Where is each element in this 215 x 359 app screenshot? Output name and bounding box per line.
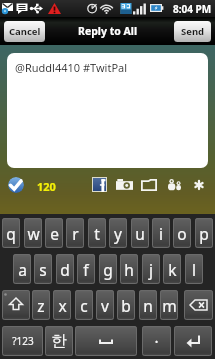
staticText: v bbox=[101, 295, 109, 316]
button[interactable]: x bbox=[53, 290, 71, 320]
staticText: a bbox=[18, 259, 27, 280]
button[interactable]: m bbox=[160, 290, 178, 320]
button[interactable]: 한 bbox=[45, 326, 73, 356]
staticText: @Ruddl4410 #TwitPal bbox=[15, 60, 128, 75]
button[interactable]: i bbox=[152, 218, 170, 248]
button[interactable]: ?123 bbox=[2, 326, 43, 356]
staticText: j bbox=[149, 259, 153, 280]
staticText: m bbox=[162, 295, 177, 316]
button[interactable]: f bbox=[77, 254, 95, 284]
button[interactable]: h bbox=[120, 254, 138, 284]
button[interactable]: g bbox=[99, 254, 117, 284]
staticText: i bbox=[159, 223, 163, 244]
button[interactable]: d bbox=[56, 254, 74, 284]
staticText: 8:04 PM bbox=[173, 2, 212, 16]
button[interactable]: n bbox=[139, 290, 157, 320]
button[interactable]: l bbox=[185, 254, 203, 284]
staticText: h bbox=[124, 259, 134, 280]
staticText: s bbox=[39, 259, 47, 280]
staticText: Reply to All bbox=[78, 24, 138, 38]
button[interactable]: w bbox=[24, 218, 42, 248]
staticText: d bbox=[60, 259, 70, 280]
staticText: ?123 bbox=[12, 334, 34, 348]
button[interactable]: c bbox=[75, 290, 93, 320]
staticText: u bbox=[135, 223, 145, 244]
staticText: p bbox=[199, 223, 209, 244]
staticText: k bbox=[168, 259, 177, 280]
button[interactable]: e bbox=[45, 218, 63, 248]
staticText: t bbox=[94, 223, 100, 244]
button[interactable]: s bbox=[34, 254, 52, 284]
staticText: n bbox=[143, 295, 153, 316]
button[interactable]: More bbox=[195, 181, 203, 189]
button[interactable]: Send bbox=[174, 21, 211, 42]
staticText: Send bbox=[181, 25, 205, 38]
button[interactable]: @Ruddl4410 #TwitPal bbox=[7, 53, 208, 168]
button[interactable]: Gallery bbox=[141, 179, 157, 195]
button[interactable]: z bbox=[32, 290, 50, 320]
button[interactable]: t bbox=[88, 218, 106, 248]
staticText: o bbox=[177, 223, 187, 244]
button[interactable]: Camera bbox=[116, 179, 133, 196]
button[interactable]: b bbox=[117, 290, 135, 320]
button[interactable] bbox=[174, 326, 212, 356]
button[interactable]: k bbox=[163, 254, 181, 284]
button[interactable]: Facebook bbox=[92, 177, 107, 192]
button[interactable] bbox=[75, 326, 137, 356]
button[interactable]: p bbox=[195, 218, 213, 248]
staticText: e bbox=[50, 223, 59, 244]
button[interactable]: Cancel bbox=[4, 21, 45, 42]
staticText: q bbox=[6, 223, 16, 244]
button[interactable]: a bbox=[13, 254, 31, 284]
staticText: b bbox=[121, 295, 131, 316]
button[interactable]: q bbox=[2, 218, 20, 248]
button[interactable]: o bbox=[173, 218, 191, 248]
staticText: g bbox=[103, 259, 113, 280]
button[interactable]: · bbox=[142, 326, 171, 356]
staticText: 120 bbox=[37, 179, 56, 194]
staticText: y bbox=[114, 223, 122, 244]
button[interactable]: u bbox=[131, 218, 149, 248]
staticText: 한 bbox=[51, 331, 67, 351]
button[interactable]: y bbox=[109, 218, 127, 248]
staticText: Cancel bbox=[9, 25, 41, 38]
button[interactable]: j bbox=[142, 254, 160, 284]
button[interactable]: Tweet bbox=[8, 177, 24, 193]
button[interactable]: v bbox=[96, 290, 114, 320]
button[interactable]: r bbox=[66, 218, 84, 248]
button[interactable]: Contacts bbox=[168, 179, 181, 192]
staticText: f bbox=[83, 259, 89, 280]
staticText: w bbox=[27, 223, 40, 244]
staticText: x bbox=[58, 295, 67, 316]
staticText: l bbox=[192, 259, 196, 280]
staticText: z bbox=[37, 295, 45, 316]
staticText: · bbox=[154, 331, 159, 352]
staticText: c bbox=[80, 295, 88, 316]
button[interactable] bbox=[2, 290, 30, 320]
button[interactable] bbox=[184, 290, 213, 320]
staticText: r bbox=[72, 223, 79, 244]
